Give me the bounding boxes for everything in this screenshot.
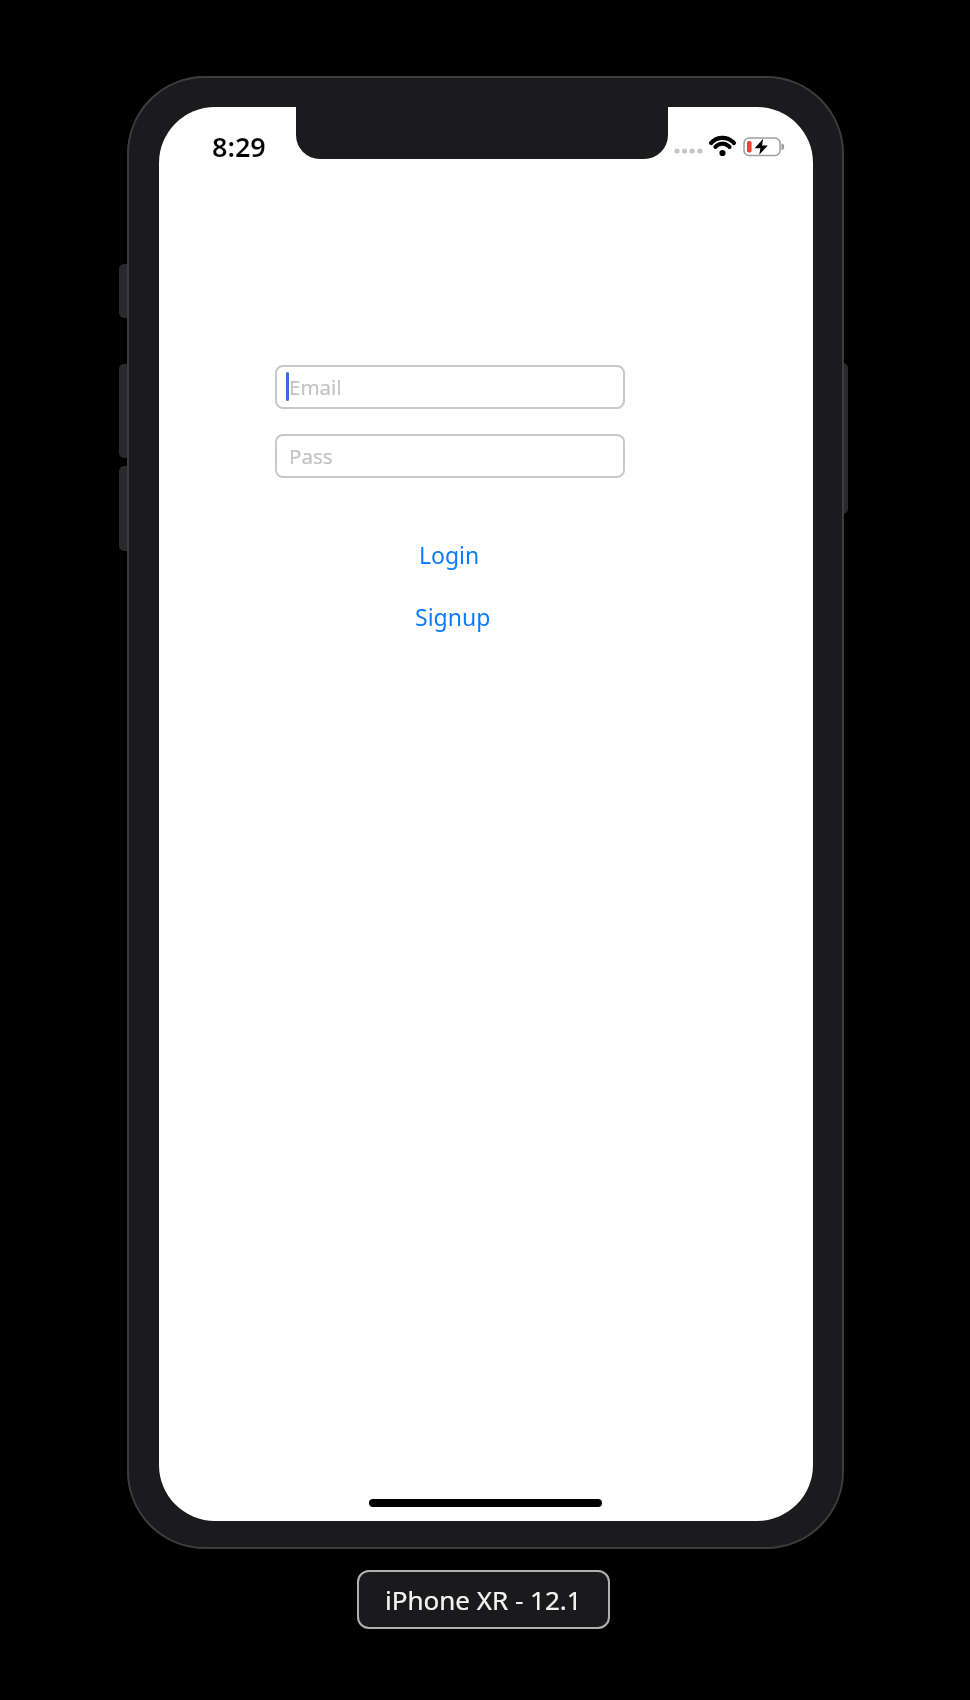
button[interactable]: Login xyxy=(389,537,509,571)
staticText: Email xyxy=(289,373,342,401)
staticText: 8:29 xyxy=(212,128,266,165)
staticText: Pass xyxy=(289,442,333,470)
button[interactable]: Pass xyxy=(275,434,625,478)
staticText: Login xyxy=(419,539,480,570)
staticText: Signup xyxy=(415,601,491,632)
staticText: iPhone XR - 12.1 xyxy=(385,1582,582,1617)
button[interactable]: Email xyxy=(275,365,625,409)
button[interactable]: Signup xyxy=(393,599,513,633)
